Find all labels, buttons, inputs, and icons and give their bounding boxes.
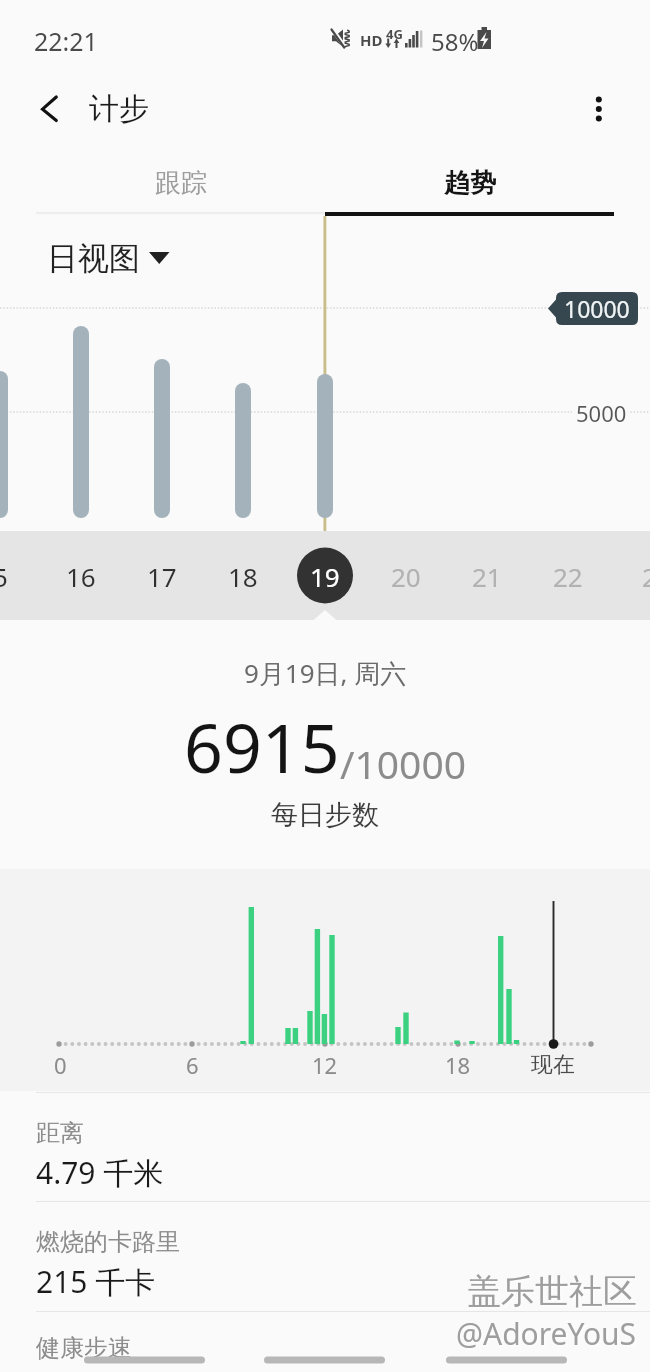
button[interactable]: 16 <box>51 546 111 606</box>
staticText: 20 <box>391 559 421 594</box>
staticText: 5 <box>0 559 8 594</box>
staticText: 燃烧的卡路里 <box>36 1227 180 1257</box>
button[interactable]: 健康步速 <box>0 1312 650 1362</box>
staticText: 4.79 千米 <box>36 1152 164 1193</box>
staticText: 58% <box>431 25 479 58</box>
button[interactable]: 5 <box>0 546 30 606</box>
staticText: 17 <box>147 559 177 594</box>
button[interactable]: 跟踪 <box>36 152 325 214</box>
staticText: @AdoreYouS <box>458 1315 639 1356</box>
staticText: 盖乐世社区 <box>469 1272 639 1315</box>
staticText: 现在 <box>531 1051 575 1077</box>
staticText: 16 <box>66 559 96 594</box>
button[interactable]: 2 <box>619 546 650 606</box>
button[interactable]: 日视图 <box>42 236 178 278</box>
staticText: @AdoreYouS <box>456 1313 637 1354</box>
staticText: 6915 <box>184 700 340 793</box>
staticText: 日视图 <box>47 239 140 278</box>
staticText: 趋势 <box>444 167 496 200</box>
staticText: 18 <box>445 1050 471 1076</box>
staticText: 18 <box>228 559 258 594</box>
staticText: 215 千卡 <box>36 1261 156 1302</box>
staticText: 2 <box>642 559 650 594</box>
button[interactable]: 18 <box>213 546 273 606</box>
staticText: 计步 <box>89 90 149 128</box>
button[interactable]: 19 <box>295 546 355 606</box>
staticText: 9月19日, 周六 <box>244 655 407 691</box>
button[interactable]: 20 <box>376 546 436 606</box>
staticText: 12 <box>312 1050 338 1076</box>
staticText: /10000 <box>340 737 467 790</box>
staticText: 10000 <box>564 293 630 324</box>
staticText: 5000 <box>576 398 627 426</box>
staticText: 6 <box>186 1050 199 1076</box>
button[interactable]: More options <box>575 85 623 133</box>
button[interactable]: 趋势 <box>325 152 614 214</box>
button[interactable]: 燃烧的卡路里 <box>0 1201 650 1310</box>
staticText: 盖乐世社区 <box>467 1270 637 1313</box>
staticText: HD <box>360 30 383 50</box>
button[interactable]: 21 <box>457 546 517 606</box>
staticText: 每日步数 <box>271 798 379 832</box>
staticText: 0 <box>54 1050 67 1076</box>
staticText: 22 <box>553 559 583 594</box>
button[interactable]: 17 <box>132 546 192 606</box>
staticText: 21 <box>472 559 502 594</box>
staticText: 跟踪 <box>155 167 207 200</box>
button[interactable]: 22 <box>538 546 598 606</box>
staticText: 距离 <box>36 1118 84 1148</box>
button[interactable]: Back <box>25 85 73 133</box>
button[interactable]: 距离 <box>0 1092 650 1201</box>
staticText: 健康步速 <box>36 1333 132 1363</box>
staticText: 22:21 <box>34 24 98 58</box>
staticText: 19 <box>310 559 340 594</box>
staticText: 4G <box>386 25 403 43</box>
